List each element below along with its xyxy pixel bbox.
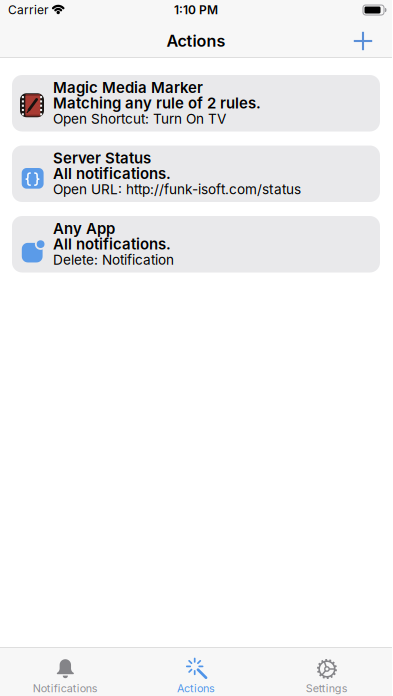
button[interactable]: Settings — [261, 658, 392, 695]
button[interactable]: Notifications — [0, 658, 131, 695]
staticText: Actions — [177, 682, 215, 695]
staticText: Magic Media Marker — [53, 79, 203, 96]
staticText: Notifications — [33, 682, 98, 695]
staticText: Settings — [306, 682, 348, 695]
staticText: Any App — [53, 220, 115, 237]
button[interactable]: Any App — [12, 216, 380, 272]
staticText: All notifications. — [53, 235, 171, 253]
staticText: Actions — [166, 31, 225, 50]
button[interactable]: Server Status — [12, 145, 380, 202]
button[interactable]: Actions — [131, 658, 261, 695]
staticText: All notifications. — [53, 165, 171, 182]
staticText: Server Status — [53, 149, 151, 167]
button[interactable]: Magic Media Marker — [12, 75, 380, 131]
staticText: Carrier — [8, 3, 49, 17]
button[interactable]: Add — [353, 31, 373, 51]
staticText: Matching any rule of 2 rules. — [53, 94, 261, 112]
staticText: Delete: Notification — [53, 252, 174, 268]
staticText: Open URL: http://funk-isoft.com/status — [53, 181, 301, 197]
staticText: Open Shortcut: Turn On TV — [53, 111, 226, 127]
staticText: 1:10 PM — [174, 3, 218, 17]
